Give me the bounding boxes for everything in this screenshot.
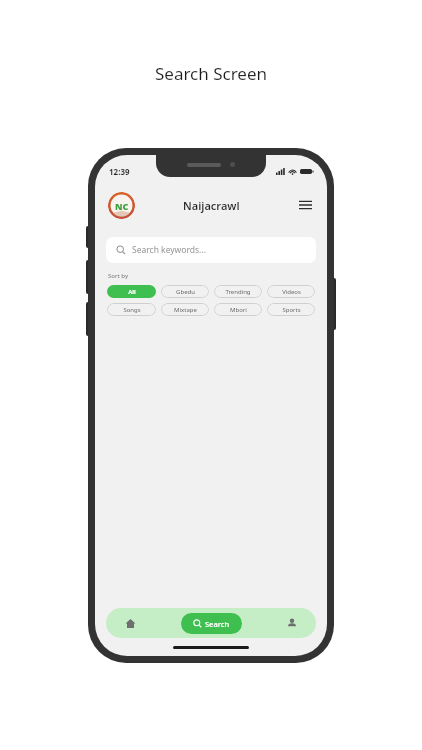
- button[interactable]: Mixtape: [161, 303, 209, 316]
- button[interactable]: Gbedu: [161, 285, 209, 298]
- button[interactable]: Songs: [107, 303, 156, 316]
- staticText: Search: [205, 619, 230, 629]
- button[interactable]: Trending: [214, 285, 262, 298]
- staticText: Naijacrawl: [183, 198, 240, 213]
- staticText: Sports: [282, 306, 301, 314]
- button[interactable]: All: [107, 285, 156, 298]
- staticText: 12:39: [109, 166, 130, 177]
- staticText: Songs: [123, 306, 141, 314]
- button[interactable]: Menu: [294, 194, 316, 216]
- button[interactable]: Search keywords...: [106, 237, 316, 263]
- button[interactable]: Search: [181, 613, 242, 634]
- staticText: Trending: [225, 288, 251, 296]
- staticText: Sort by: [108, 272, 129, 280]
- button[interactable]: Naijacrawl logo: [108, 192, 135, 219]
- staticText: Mixtape: [174, 306, 197, 314]
- button[interactable]: Profile: [282, 613, 302, 633]
- button[interactable]: Sports: [267, 303, 315, 316]
- staticText: Videos: [282, 288, 301, 296]
- staticText: Mbori: [230, 306, 247, 314]
- button[interactable]: Mbori: [214, 303, 262, 316]
- staticText: NC: [115, 200, 129, 212]
- staticText: Search Screen: [0, 62, 422, 85]
- staticText: All: [128, 288, 136, 296]
- button[interactable]: Videos: [267, 285, 315, 298]
- staticText: Gbedu: [176, 288, 195, 296]
- button[interactable]: Home: [120, 613, 140, 633]
- staticText: Search keywords...: [132, 244, 206, 256]
